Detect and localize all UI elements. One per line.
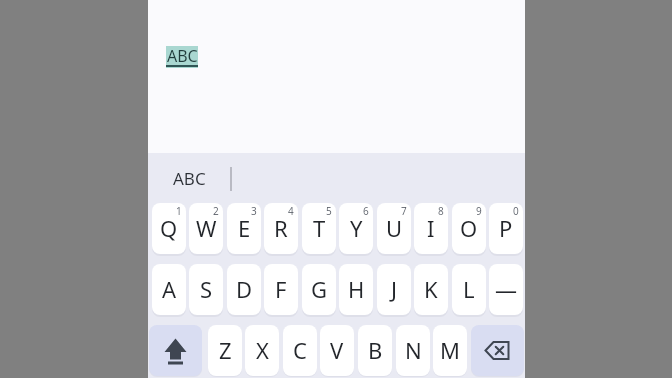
staticText: R xyxy=(274,213,288,243)
button[interactable]: O xyxy=(452,203,486,254)
staticText: E xyxy=(238,213,251,243)
button[interactable]: Z xyxy=(208,325,242,376)
staticText: W xyxy=(196,213,217,243)
staticText: N xyxy=(405,335,422,365)
staticText: F xyxy=(275,274,287,304)
staticText: 9 xyxy=(476,204,482,218)
staticText: 0 xyxy=(513,204,519,218)
staticText: X xyxy=(256,335,269,365)
button[interactable]: B xyxy=(358,325,392,376)
staticText: 7 xyxy=(401,204,407,218)
staticText: B xyxy=(368,335,383,365)
button[interactable]: S xyxy=(189,264,223,315)
staticText: 5 xyxy=(326,204,332,218)
button[interactable]: P xyxy=(489,203,523,254)
staticText: K xyxy=(424,274,438,304)
staticText: U xyxy=(386,213,403,243)
staticText: D xyxy=(236,274,253,304)
staticText: Y xyxy=(350,213,363,243)
staticText: ABC xyxy=(167,45,198,67)
button[interactable]: K xyxy=(414,264,448,315)
staticText: 6 xyxy=(363,204,369,218)
staticText: 3 xyxy=(251,204,257,218)
button[interactable]: F xyxy=(264,264,298,315)
button[interactable]: C xyxy=(283,325,317,376)
staticText: 8 xyxy=(438,204,444,218)
staticText: Q xyxy=(160,213,178,243)
staticText: A xyxy=(162,274,177,304)
button[interactable]: ABC xyxy=(166,46,198,68)
button[interactable]: D xyxy=(227,264,261,315)
staticText: 4 xyxy=(288,204,294,218)
staticText: Z xyxy=(219,335,232,365)
staticText: G xyxy=(311,274,328,304)
staticText: J xyxy=(391,274,398,304)
staticText: 1 xyxy=(176,204,182,218)
button[interactable]: H xyxy=(339,264,373,315)
staticText: C xyxy=(293,335,307,365)
button[interactable]: G xyxy=(302,264,336,315)
staticText: I xyxy=(427,213,435,243)
staticText: M xyxy=(440,335,460,365)
staticText: 2 xyxy=(213,204,219,218)
button[interactable]: V xyxy=(320,325,354,376)
staticText: ABC xyxy=(173,167,206,190)
button[interactable]: — xyxy=(489,264,523,315)
staticText: H xyxy=(348,274,365,304)
button[interactable]: R xyxy=(264,203,298,254)
button[interactable]: Y xyxy=(339,203,373,254)
staticText: O xyxy=(460,213,478,243)
button[interactable]: L xyxy=(452,264,486,315)
button[interactable]: T xyxy=(302,203,336,254)
button[interactable] xyxy=(471,325,524,376)
button[interactable]: J xyxy=(377,264,411,315)
button[interactable]: M xyxy=(433,325,467,376)
button[interactable]: A xyxy=(152,264,186,315)
button[interactable]: N xyxy=(396,325,430,376)
button[interactable]: U xyxy=(377,203,411,254)
staticText: V xyxy=(330,335,344,365)
button[interactable]: E xyxy=(227,203,261,254)
staticText: — xyxy=(495,274,518,304)
staticText: S xyxy=(200,274,213,304)
staticText: L xyxy=(463,274,475,304)
button[interactable] xyxy=(149,325,202,376)
button[interactable]: I xyxy=(414,203,448,254)
button[interactable]: W xyxy=(189,203,223,254)
staticText: T xyxy=(313,213,326,243)
button[interactable]: X xyxy=(245,325,279,376)
button[interactable]: Q xyxy=(152,203,186,254)
staticText: P xyxy=(499,213,513,243)
